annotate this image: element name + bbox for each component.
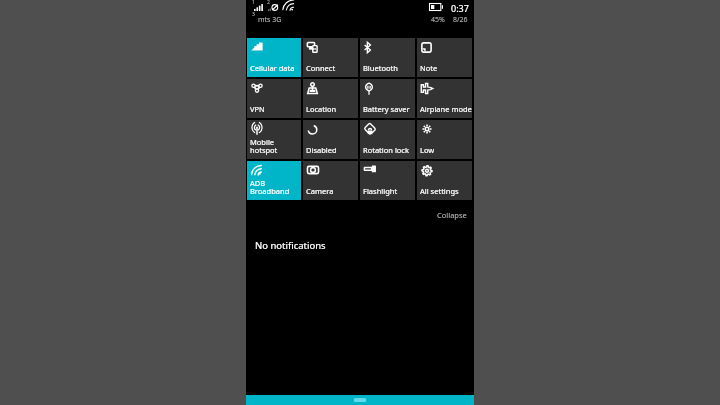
- staticText: 1: [252, 0, 255, 6]
- button[interactable]: Disabled: [303, 120, 358, 159]
- staticText: VPN: [250, 104, 265, 114]
- button[interactable]: Battery saver: [360, 79, 415, 118]
- staticText: 2: [267, 0, 270, 6]
- button[interactable]: Note: [417, 38, 472, 77]
- button[interactable]: Camera: [303, 161, 358, 200]
- staticText: Battery saver: [363, 104, 410, 114]
- staticText: 8/26: [453, 15, 468, 25]
- staticText: 45%: [431, 15, 445, 25]
- staticText: Flashlight: [363, 186, 398, 196]
- button[interactable]: Connect: [303, 38, 358, 77]
- staticText: Bluetooth: [363, 63, 398, 73]
- staticText: 3: [252, 11, 255, 18]
- staticText: Connect: [306, 63, 336, 73]
- staticText: Note: [420, 63, 438, 73]
- staticText: Rotation lock: [363, 145, 409, 155]
- button[interactable]: Cellular data: [247, 38, 301, 77]
- staticText: Airplane mode: [420, 104, 472, 114]
- button[interactable]: Location: [303, 79, 358, 118]
- staticText: Camera: [306, 186, 334, 196]
- button[interactable]: Collapse: [246, 204, 474, 226]
- staticText: Disabled: [306, 145, 337, 155]
- staticText: Cellular data: [250, 63, 295, 73]
- staticText: Collapse: [437, 210, 467, 220]
- button[interactable]: ADB Broadband: [247, 161, 301, 200]
- staticText: Mobile hotspot: [250, 137, 278, 155]
- staticText: ADB Broadband: [250, 178, 290, 196]
- button[interactable]: Bluetooth: [360, 38, 415, 77]
- button[interactable]: Low: [417, 120, 472, 159]
- button[interactable]: All settings: [417, 161, 472, 200]
- staticText: Location: [306, 104, 337, 114]
- button[interactable]: Flashlight: [360, 161, 415, 200]
- staticText: 0:37: [451, 2, 469, 14]
- staticText: All settings: [420, 186, 459, 196]
- staticText: No notifications: [255, 239, 326, 252]
- staticText: Low: [420, 145, 435, 155]
- staticText: mts 3G: [258, 15, 282, 25]
- button[interactable]: Mobile hotspot: [247, 120, 301, 159]
- button[interactable]: VPN: [247, 79, 301, 118]
- button[interactable]: Airplane mode: [417, 79, 472, 118]
- button[interactable]: Home: [354, 398, 366, 402]
- button[interactable]: Rotation lock: [360, 120, 415, 159]
